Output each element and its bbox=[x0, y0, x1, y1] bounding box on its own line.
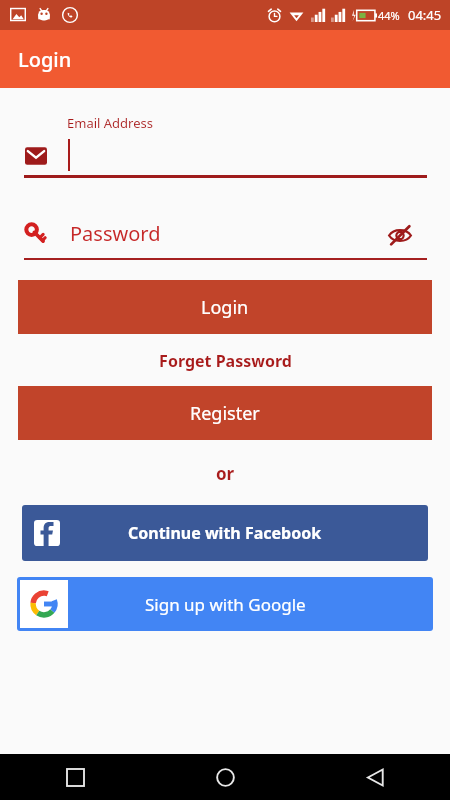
button[interactable]: Login bbox=[18, 280, 432, 334]
staticText: Email Address bbox=[67, 114, 153, 132]
button[interactable]: Sign up with Google bbox=[17, 577, 433, 631]
button[interactable]: Recent apps bbox=[0, 754, 150, 800]
staticText: Forget Password bbox=[159, 350, 292, 372]
button[interactable]: Forget Password bbox=[0, 350, 450, 372]
staticText: 04:45 bbox=[408, 6, 442, 24]
staticText: 44% bbox=[378, 8, 400, 23]
staticText: Login bbox=[201, 295, 249, 320]
button[interactable]: Email Address bbox=[0, 100, 450, 190]
button[interactable]: Register bbox=[18, 386, 432, 440]
button[interactable]: Back bbox=[300, 754, 450, 800]
staticText: Continue with Facebook bbox=[128, 522, 322, 544]
button[interactable]: Show password bbox=[386, 221, 414, 249]
button[interactable]: Home bbox=[150, 754, 300, 800]
staticText: Password bbox=[70, 220, 161, 247]
button[interactable]: Password bbox=[0, 208, 450, 270]
staticText: or bbox=[216, 462, 235, 485]
staticText: Sign up with Google bbox=[145, 593, 306, 616]
button[interactable]: Continue with Facebook bbox=[22, 505, 428, 561]
staticText: Register bbox=[190, 401, 260, 426]
staticText: Login bbox=[18, 46, 72, 73]
